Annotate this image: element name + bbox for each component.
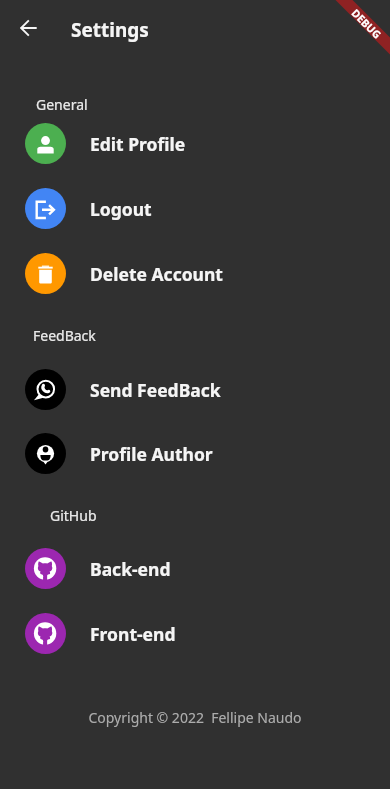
button[interactable]: Send FeedBack (0, 357, 390, 422)
staticText: Edit Profile (90, 132, 186, 156)
button[interactable]: Logout (0, 176, 390, 241)
staticText: Back-end (90, 557, 171, 581)
staticText: Settings (71, 17, 149, 43)
button[interactable]: Back-end (0, 536, 390, 601)
button[interactable]: Profile Author (0, 421, 390, 486)
staticText: Copyright © 2022 Fellipe Naudo (88, 708, 302, 727)
button[interactable]: Delete Account (0, 241, 390, 306)
staticText: GitHub (50, 506, 97, 525)
staticText: Front-end (90, 622, 176, 646)
staticText: Logout (90, 197, 152, 221)
button[interactable]: Front-end (0, 601, 390, 666)
staticText: Delete Account (90, 262, 223, 286)
staticText: Send FeedBack (90, 378, 221, 402)
staticText: General (36, 95, 88, 114)
staticText: Profile Author (90, 442, 213, 466)
staticText: FeedBack (33, 326, 96, 345)
button[interactable]: Edit Profile (0, 111, 390, 176)
staticText: DEBUG (350, 6, 385, 41)
button[interactable]: Back (8, 8, 48, 48)
